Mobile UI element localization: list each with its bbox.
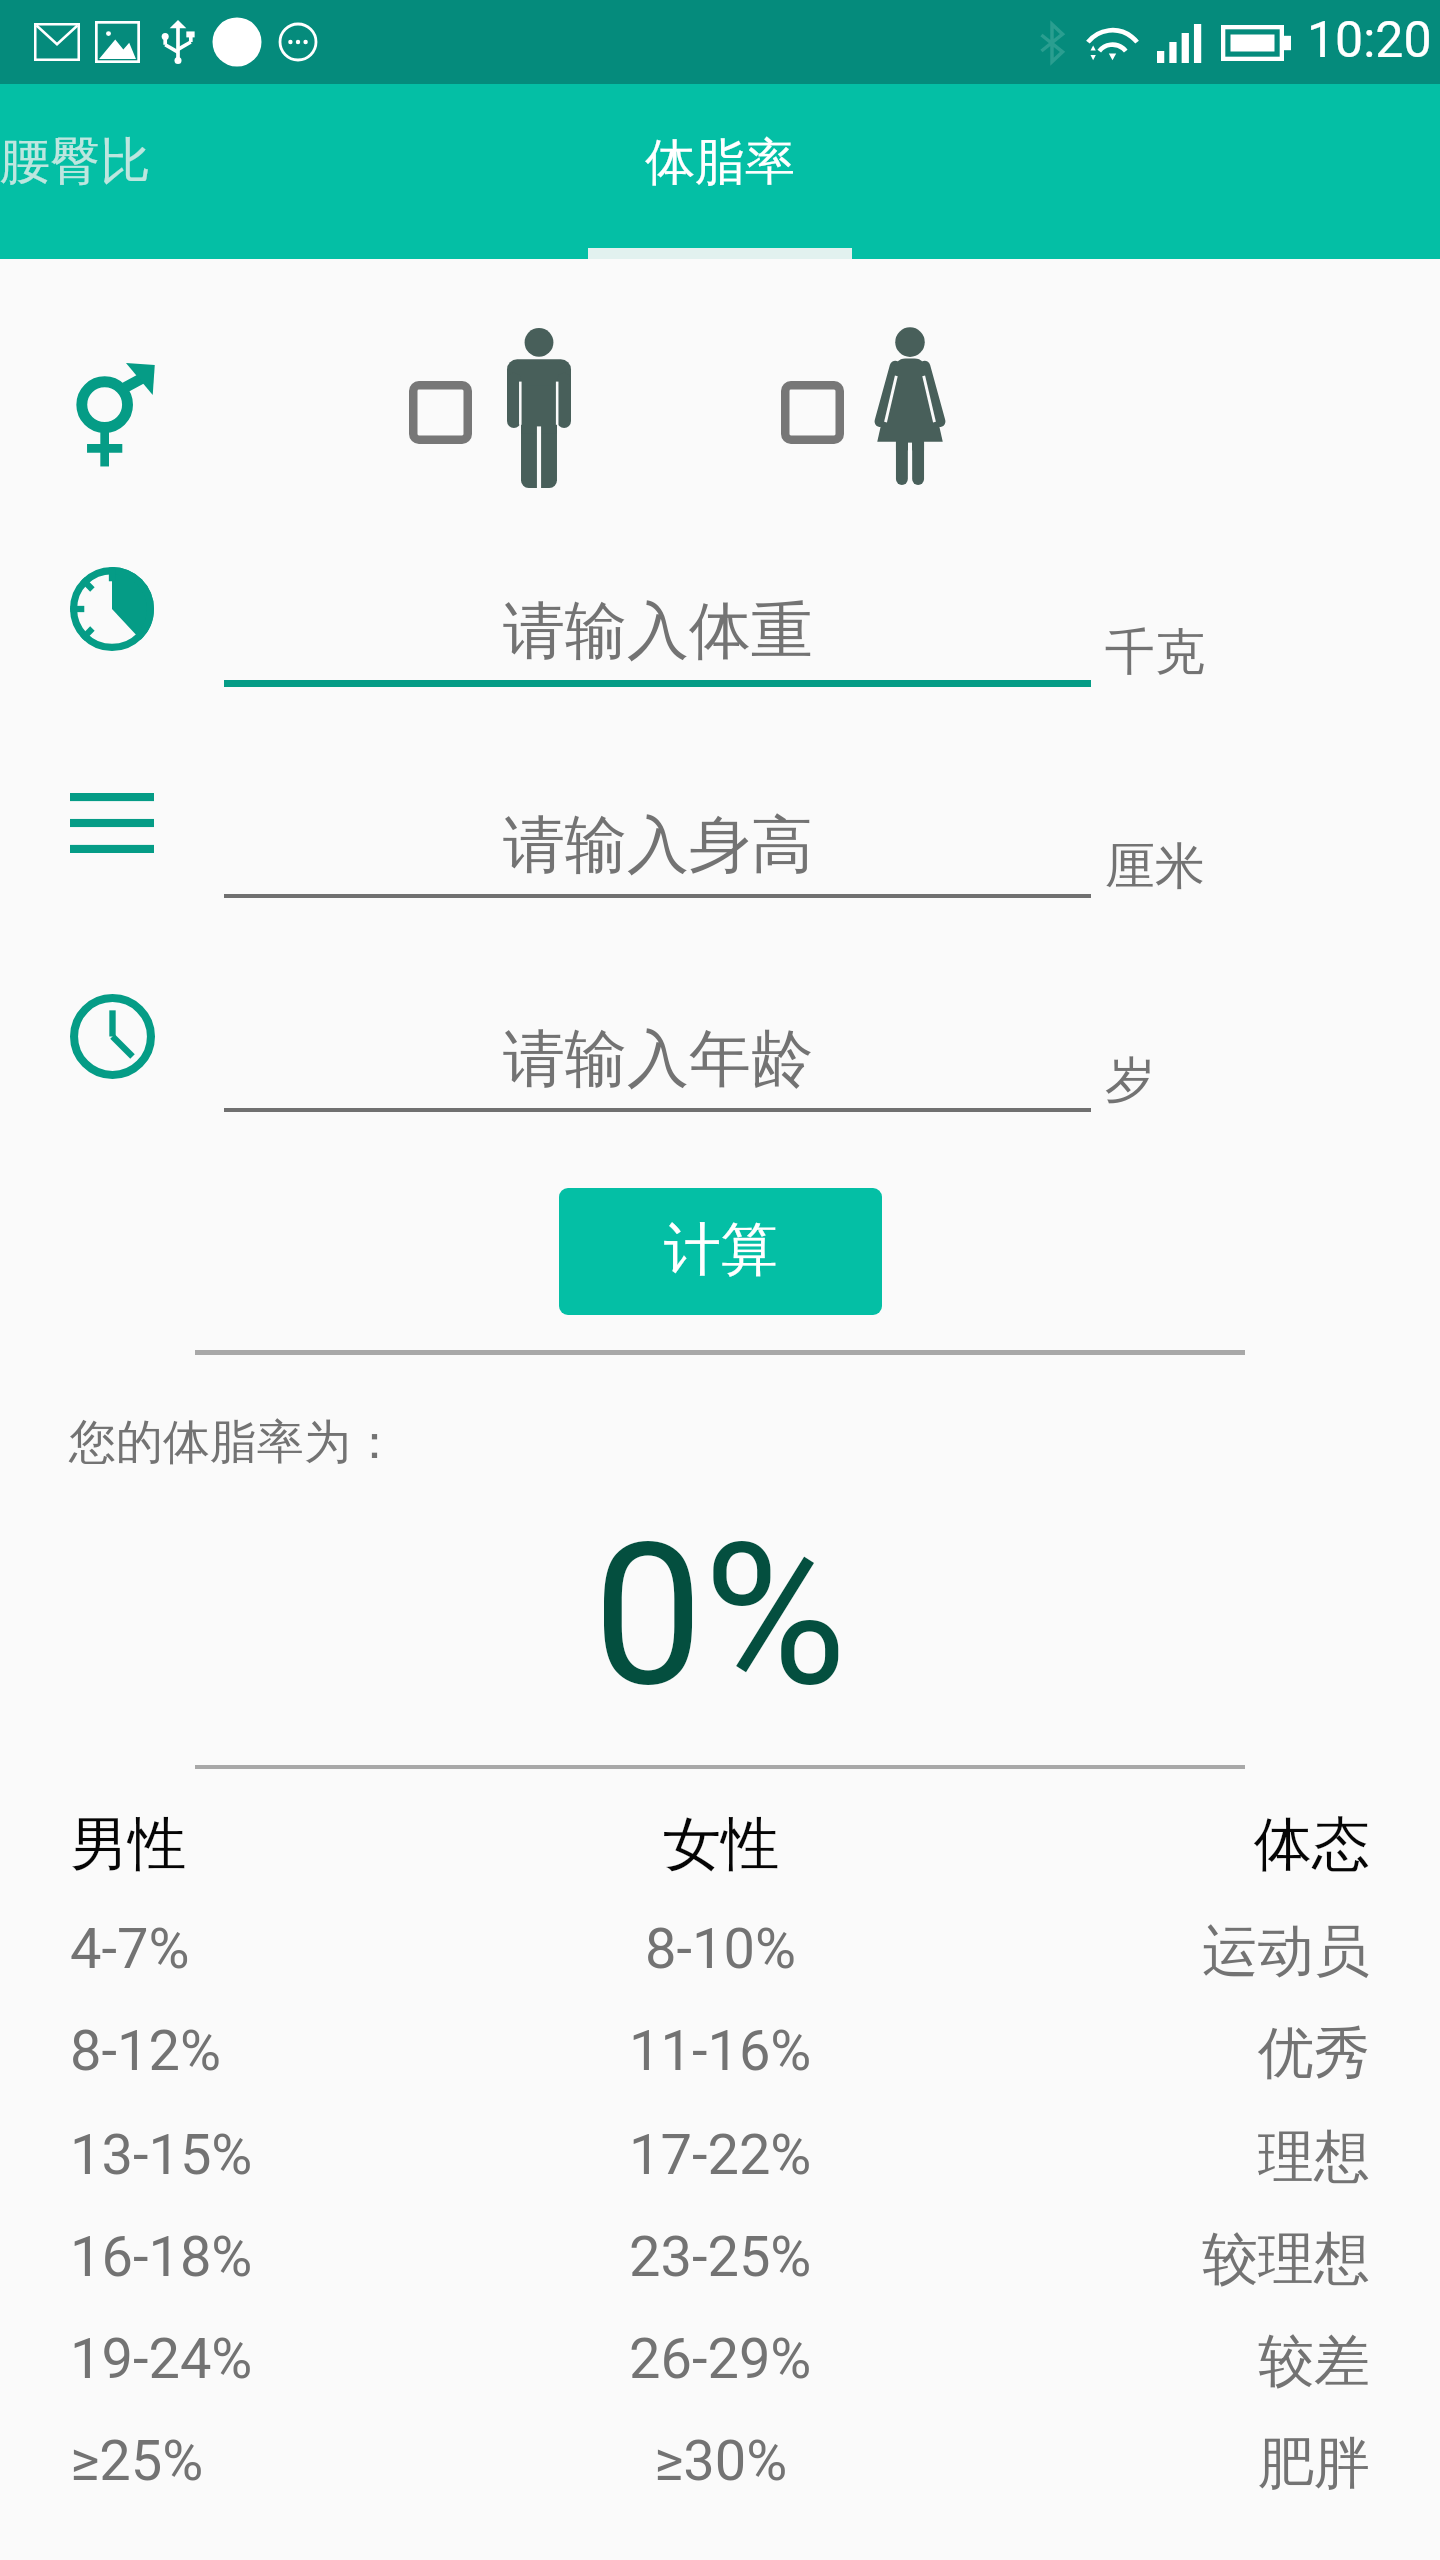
- button[interactable]: 请输入身高: [224, 776, 1091, 898]
- staticText: 10:20: [1307, 11, 1432, 70]
- staticText: 4-7%: [70, 1916, 190, 1982]
- staticText: 26-29%: [629, 2326, 812, 2392]
- staticText: 较理想: [1202, 2224, 1370, 2295]
- button[interactable]: 计算: [559, 1188, 882, 1315]
- staticText: 16-18%: [70, 2224, 253, 2290]
- staticText: 岁: [1105, 1049, 1155, 1112]
- staticText: 体脂率: [645, 131, 795, 194]
- staticText: 千克: [1105, 621, 1205, 684]
- staticText: 体态: [1254, 1808, 1370, 1881]
- staticText: 较差: [1258, 2326, 1370, 2397]
- staticText: 11-16%: [629, 2018, 812, 2084]
- staticText: ≥25%: [70, 2428, 204, 2494]
- staticText: 请输入身高: [503, 806, 813, 884]
- staticText: 8-12%: [70, 2018, 221, 2084]
- button[interactable]: 体脂率: [588, 84, 852, 259]
- button[interactable]: 腰臀比: [0, 84, 207, 259]
- staticText: 8-10%: [645, 1916, 796, 1982]
- staticText: 肥胖: [1258, 2428, 1370, 2499]
- staticText: 厘米: [1105, 835, 1205, 898]
- staticText: 0%: [593, 1501, 847, 1731]
- staticText: 请输入体重: [503, 592, 813, 670]
- staticText: 男性: [70, 1808, 186, 1881]
- staticText: 计算: [664, 1214, 778, 1286]
- staticText: ≥30%: [654, 2428, 788, 2494]
- staticText: 运动员: [1202, 1916, 1370, 1987]
- staticText: 女性: [663, 1808, 779, 1881]
- staticText: 19-24%: [70, 2326, 253, 2392]
- staticText: 13-15%: [70, 2122, 253, 2188]
- button[interactable]: 选择女性: [764, 310, 960, 510]
- button[interactable]: 请输入年龄: [224, 990, 1091, 1112]
- staticText: 23-25%: [629, 2224, 812, 2290]
- button[interactable]: 选择男性: [392, 310, 588, 510]
- staticText: 请输入年龄: [503, 1020, 813, 1098]
- button[interactable]: 请输入体重: [224, 562, 1091, 687]
- staticText: 优秀: [1258, 2018, 1370, 2089]
- staticText: 17-22%: [629, 2122, 812, 2188]
- staticText: 您的体脂率为：: [69, 1413, 398, 1472]
- staticText: 腰臀比: [0, 130, 150, 193]
- staticText: 理想: [1258, 2122, 1370, 2193]
